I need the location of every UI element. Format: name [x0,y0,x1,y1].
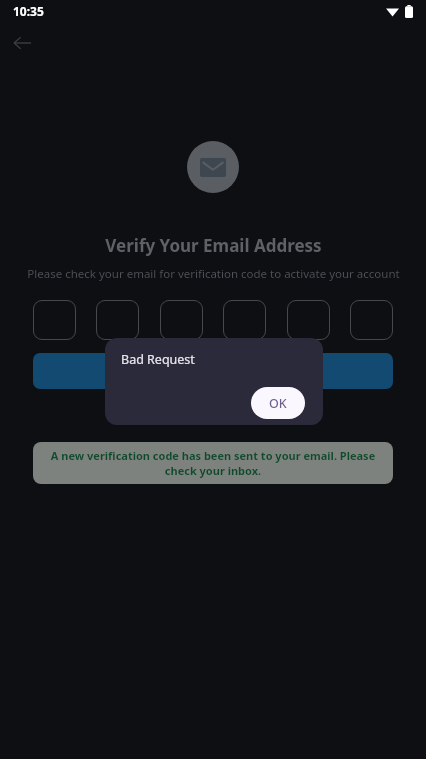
staticText: Verify Your Email Address [105,234,322,257]
staticText: Bad Request [121,351,195,368]
staticText: Please check your email for verification… [27,266,400,282]
button[interactable] [350,300,393,340]
staticText: OK [269,395,287,412]
button[interactable] [33,353,393,389]
button[interactable] [33,300,76,340]
button[interactable]: Back [6,27,38,59]
staticText: 10:35 [13,3,44,19]
button[interactable] [287,300,330,340]
button[interactable] [96,300,139,340]
button[interactable]: OK [251,387,305,419]
button[interactable] [160,300,203,340]
staticText: A new verification code has been sent to… [47,448,379,478]
button[interactable] [223,300,266,340]
